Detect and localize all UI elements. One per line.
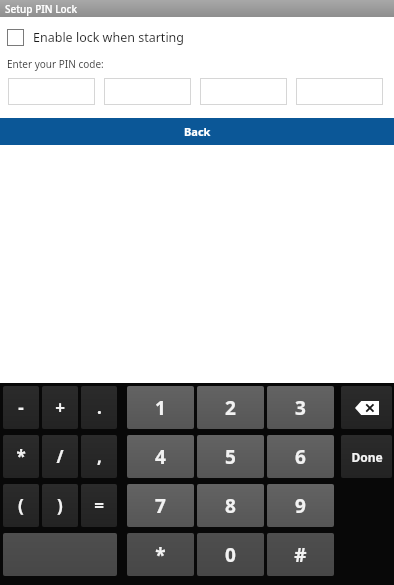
staticText: 6 [295,444,306,470]
button[interactable]: ) [42,484,78,527]
staticText: 5 [225,444,236,470]
button[interactable] [104,78,191,105]
staticText: 8 [225,493,236,519]
staticText: = [94,494,104,517]
staticText: ( [18,494,24,517]
staticText: , [97,445,102,468]
button[interactable]: 3 [267,386,334,429]
button[interactable]: 5 [197,435,264,478]
button[interactable] [296,78,383,105]
staticText: Setup PIN Lock [5,2,78,16]
button[interactable]: 2 [197,386,264,429]
button[interactable]: 6 [267,435,334,478]
staticText: Done [351,449,383,465]
button[interactable]: 8 [197,484,264,527]
button[interactable]: . [81,386,117,429]
button[interactable]: Back [0,118,394,145]
button[interactable]: Enable lock when starting [7,29,185,46]
staticText: / [56,445,64,468]
staticText: - [18,396,24,419]
button[interactable]: 9 [267,484,334,527]
staticText: 0 [225,542,236,568]
staticText: # [294,542,307,568]
staticText: Enter your PIN code: [7,57,104,71]
button[interactable]: 0 [197,533,264,576]
staticText: ) [57,494,63,517]
staticText: 4 [155,444,166,470]
button[interactable] [200,78,287,105]
button[interactable]: 4 [127,435,194,478]
button[interactable] [8,78,95,105]
button[interactable]: / [42,435,78,478]
button[interactable]: * [3,435,39,478]
staticText: 7 [155,493,166,519]
button[interactable]: , [81,435,117,478]
button[interactable]: = [81,484,117,527]
staticText: Enable lock when starting [33,29,185,46]
staticText: Back [184,124,211,139]
staticText: + [55,396,65,419]
button[interactable]: ( [3,484,39,527]
staticText: 3 [295,395,306,421]
staticText: 9 [295,493,306,519]
button[interactable]: * [127,533,194,576]
staticText: * [16,445,26,468]
button[interactable]: 1 [127,386,194,429]
staticText: 2 [225,395,236,421]
button[interactable]: 7 [127,484,194,527]
staticText: * [155,542,166,568]
staticText: 1 [155,395,166,421]
button[interactable]: - [3,386,39,429]
button[interactable]: Done [341,435,392,478]
button[interactable]: + [42,386,78,429]
staticText: . [97,396,102,419]
button[interactable]: Backspace [341,386,392,429]
button[interactable]: # [267,533,334,576]
